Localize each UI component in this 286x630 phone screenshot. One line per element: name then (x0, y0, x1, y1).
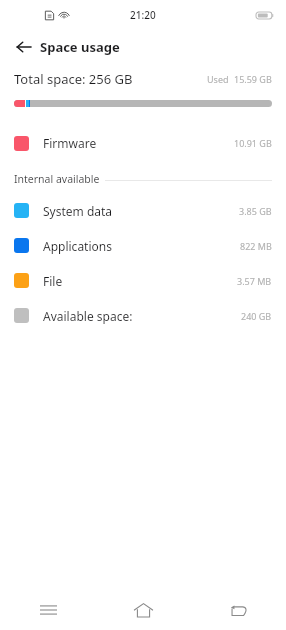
staticText: Available space: (43, 308, 241, 324)
staticText: 15.59 GB (234, 73, 272, 85)
button[interactable]: Available space: (0, 301, 286, 330)
staticText: 822 MB (240, 240, 272, 252)
staticText: 10.91 GB (234, 137, 272, 149)
staticText: 3.85 GB (239, 205, 272, 217)
staticText: Space usage (40, 38, 120, 56)
button[interactable]: Recent apps (0, 590, 96, 630)
button[interactable]: Back (9, 32, 39, 62)
staticText: 21:20 (130, 8, 156, 22)
button[interactable]: Back (191, 590, 286, 630)
button[interactable]: Home (96, 590, 191, 630)
button[interactable]: File (0, 266, 286, 295)
staticText: Used (207, 73, 229, 85)
staticText: Internal available (14, 172, 100, 186)
staticText: Total space: 256 GB (14, 70, 133, 88)
staticText: 240 GB (241, 310, 272, 322)
staticText: Firmware (43, 135, 234, 151)
staticText: File (43, 273, 237, 289)
staticText: 3.57 MB (237, 275, 272, 287)
button[interactable]: Firmware (0, 128, 286, 158)
staticText: System data (43, 203, 239, 219)
button[interactable]: System data (0, 196, 286, 225)
button[interactable]: Applications (0, 231, 286, 260)
staticText: Applications (43, 238, 240, 254)
